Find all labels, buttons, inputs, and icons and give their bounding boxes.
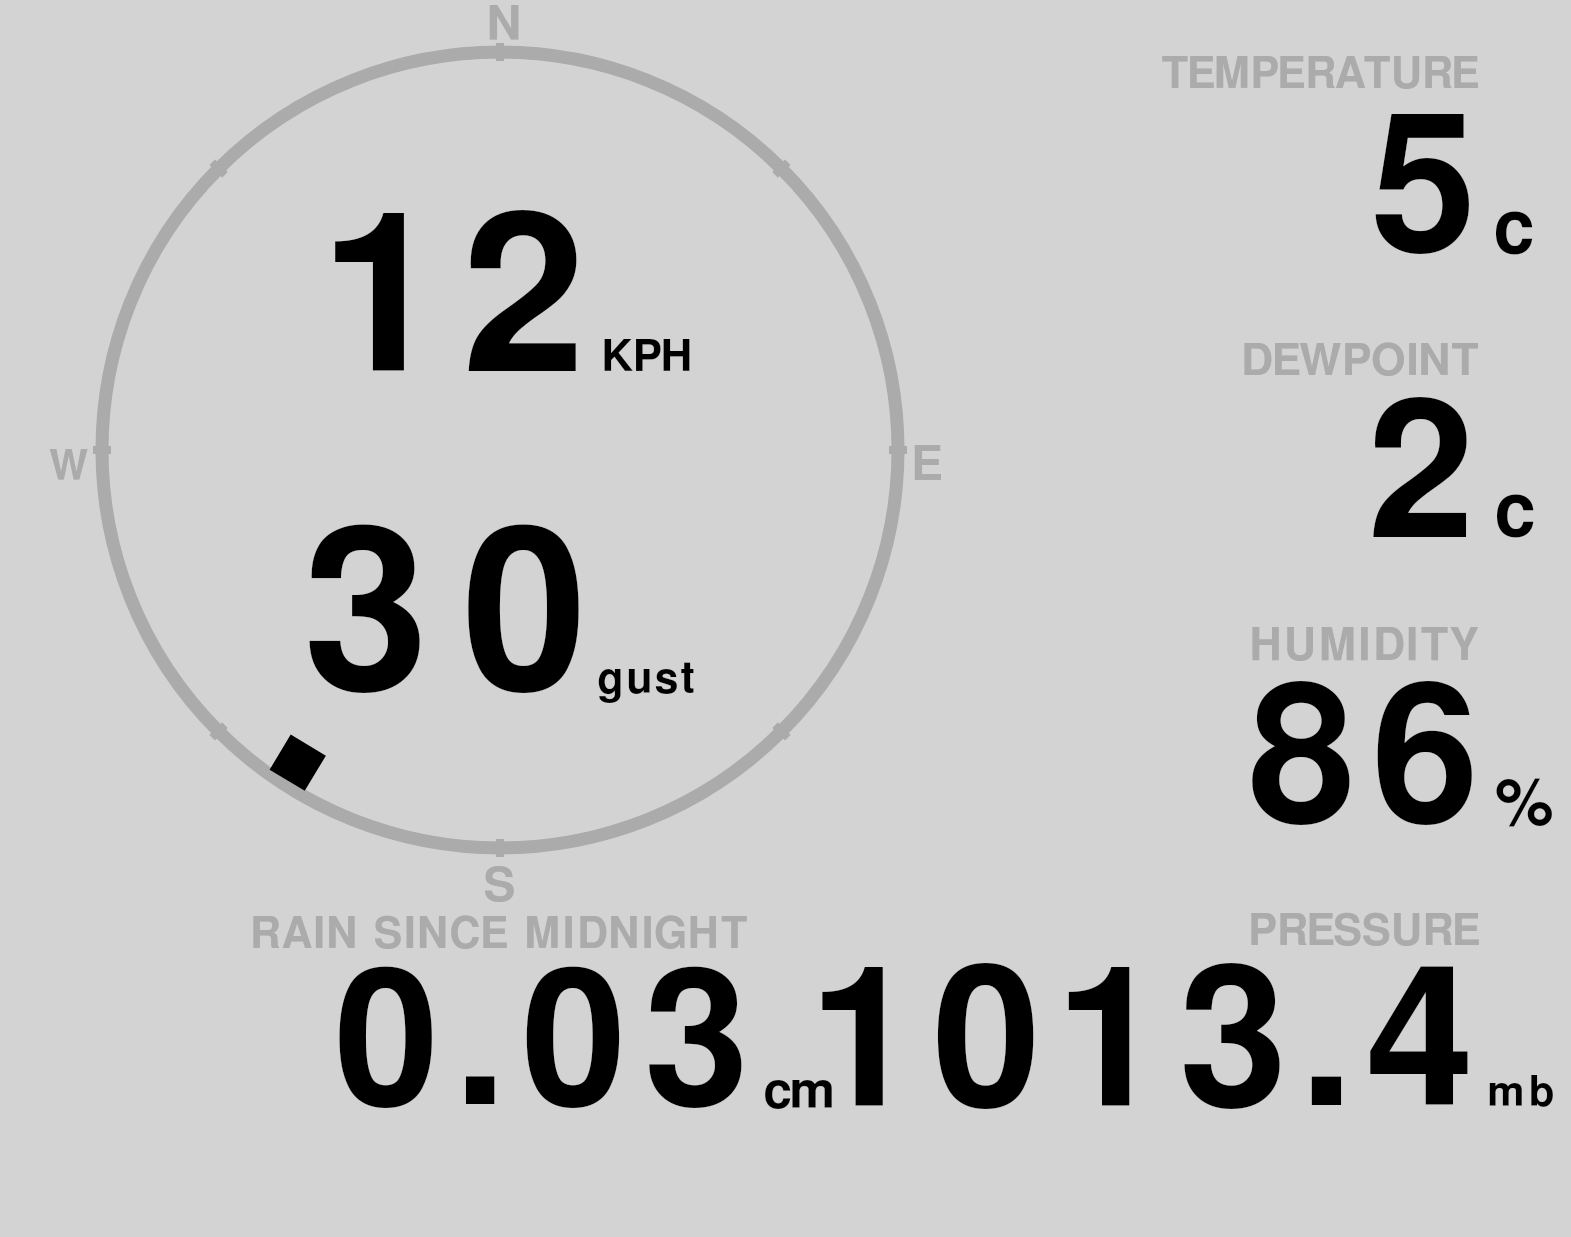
button[interactable]: Weather station dashboard bbox=[0, 0, 1571, 1237]
